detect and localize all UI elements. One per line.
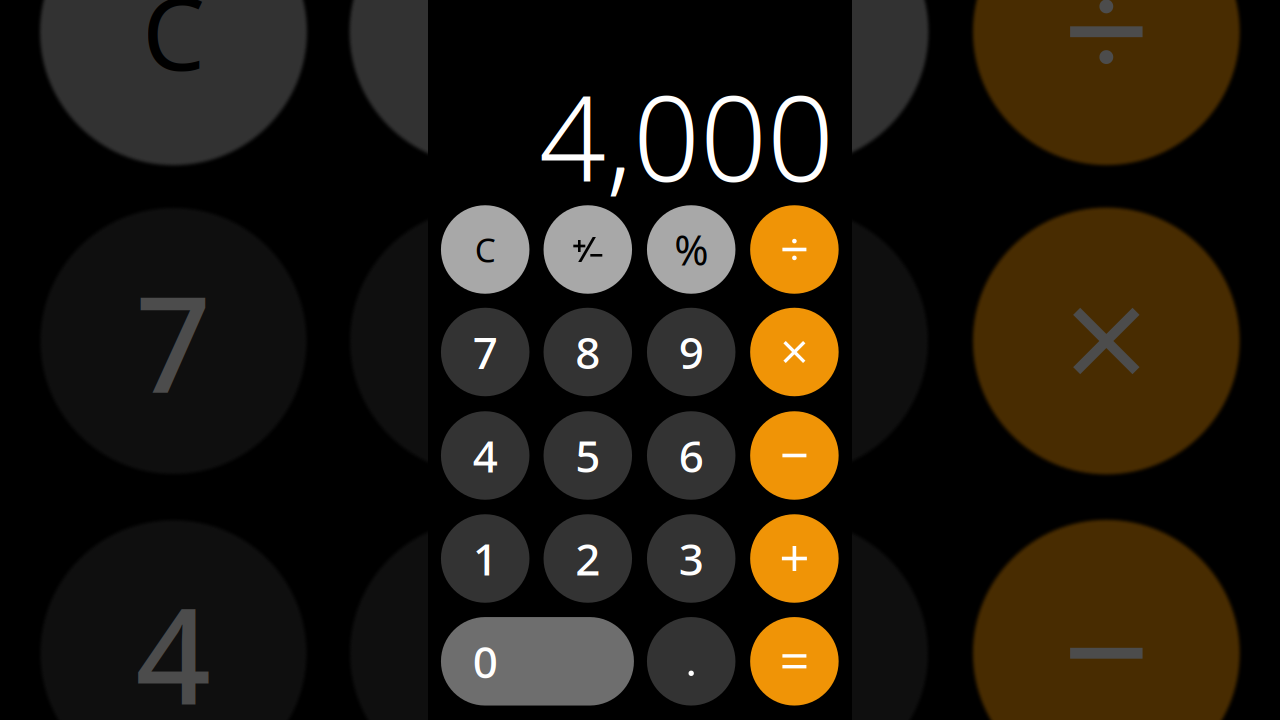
button[interactable]: 9 (661, 207, 928, 474)
button[interactable]: 8 (543, 308, 632, 396)
button[interactable]: 4 (40, 520, 307, 720)
staticText: 8 (575, 323, 600, 381)
staticText: 9 (679, 323, 704, 381)
button[interactable]: Divide (750, 205, 839, 294)
button[interactable]: 5 (349, 520, 616, 720)
staticText: 8 (445, 253, 521, 429)
staticText: 6 (757, 566, 833, 720)
button[interactable]: 5 (543, 411, 632, 500)
staticText: 5 (445, 566, 521, 720)
button[interactable]: 8 (349, 207, 616, 474)
button[interactable]: Divide (973, 0, 1240, 165)
staticText: % (674, 222, 708, 277)
staticText: 2 (575, 529, 600, 588)
button[interactable]: Decimal point (647, 617, 735, 705)
staticText: 4 (473, 426, 498, 485)
staticText: C (475, 227, 496, 272)
button[interactable]: 6 (661, 520, 928, 720)
staticText: 6 (679, 426, 704, 485)
button[interactable]: 4 (441, 411, 529, 500)
staticText: 4 (135, 566, 211, 720)
button[interactable]: 2 (543, 514, 632, 603)
staticText: 7 (135, 253, 211, 429)
button[interactable]: 1 (441, 514, 529, 603)
button[interactable]: Multiply (750, 308, 839, 396)
button[interactable]: Multiply (973, 207, 1240, 474)
button[interactable]: 6 (647, 411, 735, 500)
button[interactable]: Equals (750, 617, 839, 705)
button[interactable]: Plus or minus (349, 0, 616, 165)
button[interactable]: % (647, 205, 735, 294)
button[interactable]: 7 (40, 207, 307, 474)
button[interactable]: % (661, 0, 928, 165)
button[interactable]: Plus or minus (543, 205, 632, 294)
staticText: 3 (679, 529, 704, 588)
staticText: 1 (473, 529, 498, 588)
button[interactable]: Minus (750, 411, 839, 500)
staticText: 7 (473, 323, 498, 381)
staticText: 0 (473, 632, 498, 690)
staticText: C (142, 0, 205, 98)
button[interactable]: 0 (441, 617, 634, 705)
button[interactable]: Plus (750, 514, 839, 603)
button[interactable]: Minus (973, 520, 1240, 720)
button[interactable]: 7 (441, 308, 529, 396)
button[interactable]: 3 (647, 514, 735, 603)
staticText: 5 (575, 426, 600, 485)
button[interactable]: C (441, 205, 529, 294)
button[interactable]: 9 (647, 308, 735, 396)
staticText: 4,000 (539, 58, 834, 214)
staticText: % (743, 0, 846, 114)
staticText: 9 (757, 253, 833, 429)
button[interactable]: C (40, 0, 307, 165)
